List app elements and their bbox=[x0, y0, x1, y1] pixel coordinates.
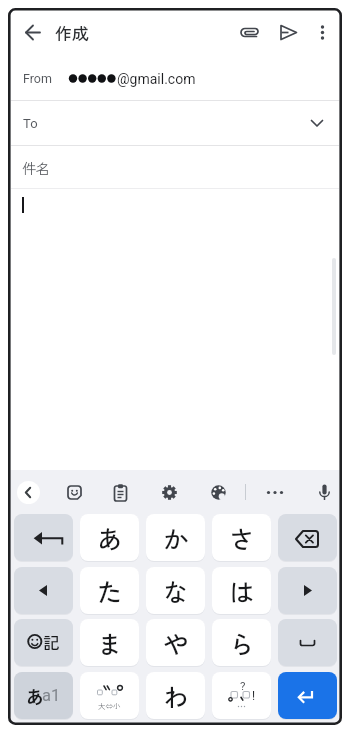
button[interactable]: は bbox=[212, 567, 271, 614]
staticText: ? bbox=[240, 679, 246, 692]
button[interactable] bbox=[11, 101, 339, 145]
staticText: 作成 bbox=[55, 20, 89, 45]
staticText: は bbox=[229, 572, 255, 609]
button[interactable] bbox=[276, 20, 301, 45]
button[interactable] bbox=[11, 146, 339, 188]
button[interactable] bbox=[18, 18, 48, 48]
button[interactable] bbox=[236, 20, 261, 45]
button[interactable] bbox=[11, 189, 339, 469]
staticText: な bbox=[163, 572, 189, 609]
staticText: 件名 bbox=[22, 158, 50, 178]
staticText: や bbox=[163, 624, 189, 661]
button[interactable]: あ bbox=[80, 514, 139, 561]
button[interactable]: あ bbox=[14, 672, 73, 719]
button[interactable]: や bbox=[146, 619, 205, 666]
button[interactable]: 記 bbox=[14, 619, 73, 666]
staticText: か bbox=[163, 519, 189, 556]
staticText: あ bbox=[26, 683, 44, 709]
staticText: ま bbox=[97, 624, 123, 661]
button[interactable] bbox=[263, 481, 287, 505]
button[interactable]: た bbox=[80, 567, 139, 614]
button[interactable] bbox=[207, 481, 230, 504]
button[interactable] bbox=[14, 567, 73, 614]
staticText: To bbox=[23, 116, 38, 131]
staticText: 大⇔小 bbox=[98, 700, 121, 711]
staticText: 記 bbox=[43, 630, 60, 654]
staticText: a1 bbox=[42, 686, 61, 705]
button[interactable] bbox=[278, 514, 337, 561]
button[interactable]: さ bbox=[212, 514, 271, 561]
staticText: ! bbox=[252, 689, 256, 703]
button[interactable]: か bbox=[146, 514, 205, 561]
button[interactable] bbox=[63, 481, 86, 504]
staticText: From bbox=[23, 71, 52, 86]
button[interactable]: わ bbox=[146, 672, 205, 719]
staticText: ら bbox=[229, 624, 255, 661]
staticText: あ bbox=[97, 519, 123, 556]
button[interactable]: 大⇔小 bbox=[80, 672, 139, 719]
button[interactable] bbox=[14, 514, 73, 561]
button[interactable]: ら bbox=[212, 619, 271, 666]
button[interactable]: ま bbox=[80, 619, 139, 666]
staticText: た bbox=[97, 572, 123, 609]
button[interactable] bbox=[278, 672, 337, 719]
button[interactable] bbox=[11, 55, 339, 100]
button[interactable] bbox=[313, 481, 336, 504]
button[interactable] bbox=[109, 481, 132, 504]
staticText: わ bbox=[163, 677, 189, 714]
button[interactable] bbox=[278, 619, 337, 666]
button[interactable] bbox=[278, 567, 337, 614]
button[interactable] bbox=[310, 20, 335, 45]
button[interactable] bbox=[17, 481, 40, 504]
button[interactable] bbox=[158, 481, 181, 504]
button[interactable]: ? bbox=[212, 672, 271, 719]
button[interactable]: な bbox=[146, 567, 205, 614]
staticText: @gmail.com bbox=[117, 71, 196, 87]
staticText: さ bbox=[229, 519, 255, 556]
